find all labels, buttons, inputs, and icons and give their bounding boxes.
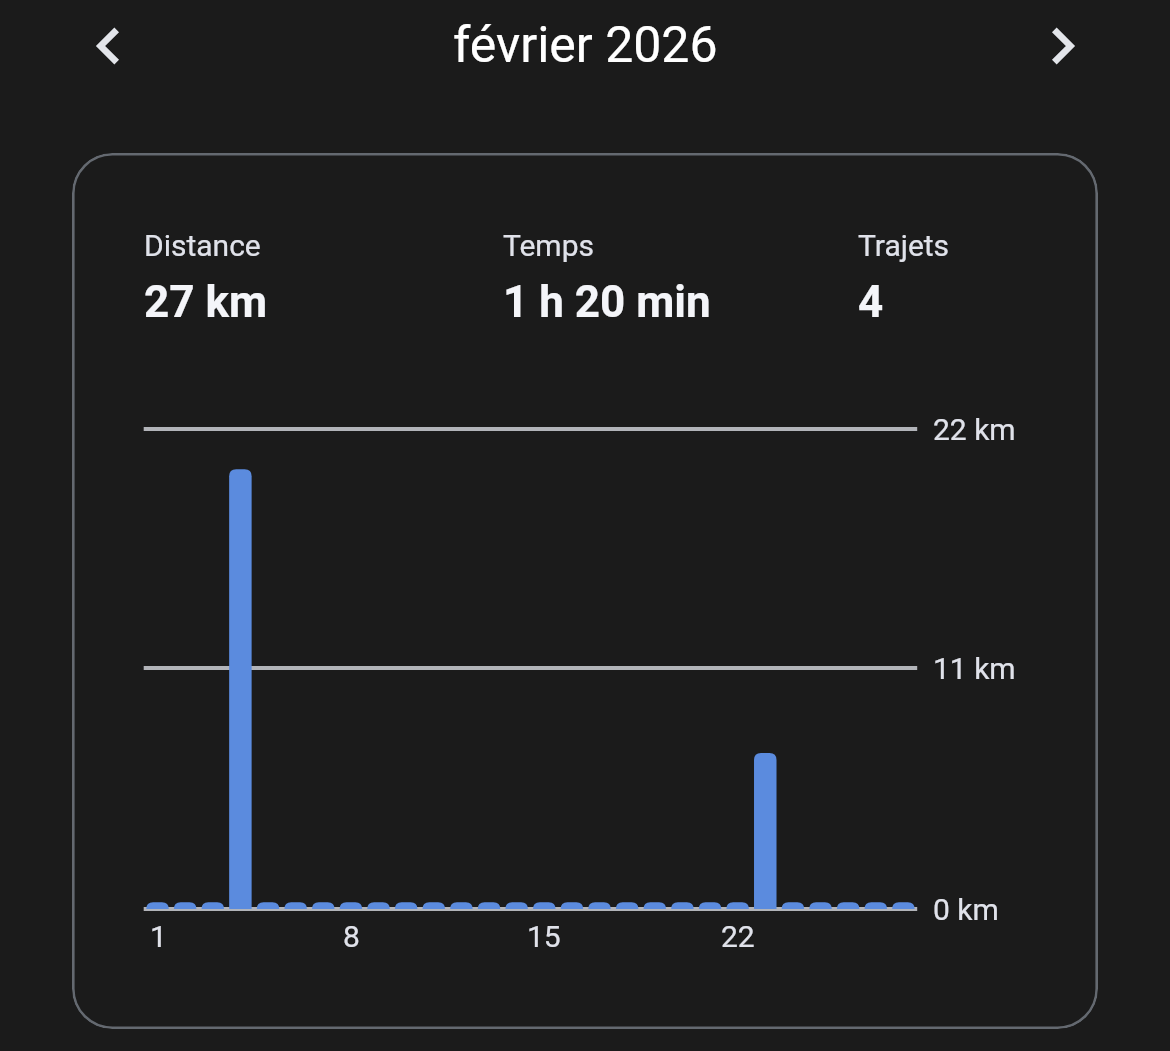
button[interactable]: Mois précédent: [77, 16, 137, 76]
staticText: 27 km: [144, 276, 268, 328]
staticText: 4: [858, 276, 884, 328]
staticText: 11 km: [933, 651, 1016, 686]
staticText: 8: [343, 919, 360, 954]
staticText: février 2026: [453, 16, 718, 75]
staticText: 1: [150, 919, 167, 954]
staticText: Temps: [503, 228, 594, 263]
staticText: 0 km: [933, 892, 999, 927]
staticText: Distance: [144, 228, 261, 263]
button[interactable]: Mois suivant: [1034, 16, 1094, 76]
staticText: Trajets: [858, 228, 950, 263]
staticText: 22: [721, 919, 755, 954]
staticText: 15: [527, 919, 561, 954]
staticText: 1 h 20 min: [503, 276, 711, 328]
staticText: 22 km: [933, 412, 1016, 447]
